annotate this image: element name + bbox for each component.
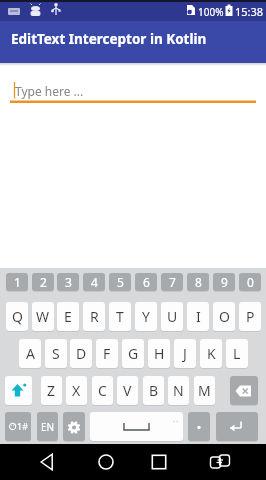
button[interactable]: F — [96, 339, 118, 368]
button[interactable]: V — [117, 376, 138, 405]
button[interactable]: T — [109, 302, 131, 331]
button[interactable]: Type here ... — [10, 63, 256, 105]
button[interactable] — [90, 412, 183, 441]
staticText: W — [36, 307, 50, 326]
staticText: Q — [12, 307, 23, 326]
staticText: 2 — [40, 274, 47, 290]
staticText: K — [207, 344, 216, 363]
button[interactable]: Y — [135, 302, 157, 331]
staticText: X — [72, 381, 81, 400]
staticText: F — [103, 344, 111, 363]
button[interactable] — [143, 446, 175, 478]
staticText: 8 — [195, 274, 202, 290]
button[interactable]: Q — [6, 302, 28, 331]
staticText: O — [219, 307, 230, 326]
button[interactable]: I — [187, 302, 209, 331]
button[interactable]: 5 — [109, 273, 131, 291]
button[interactable]: 0 — [239, 273, 261, 291]
button[interactable]: EditText Interceptor in Kotlin — [0, 21, 266, 63]
button[interactable]: 7 — [161, 273, 183, 291]
button[interactable] — [230, 376, 258, 405]
button[interactable]: G — [122, 339, 144, 368]
button[interactable]: E — [57, 302, 79, 331]
staticText: J — [183, 344, 187, 363]
staticText: 15:38 — [235, 4, 264, 19]
staticText: E — [64, 307, 72, 326]
staticText: U — [167, 307, 178, 326]
button[interactable] — [188, 412, 210, 441]
button[interactable] — [32, 446, 64, 478]
staticText: I — [196, 307, 201, 326]
staticText: Type here ... — [15, 83, 84, 99]
button[interactable]: U — [161, 302, 183, 331]
button[interactable] — [216, 412, 258, 441]
button[interactable]: O — [213, 302, 235, 331]
button[interactable]: 8 — [187, 273, 209, 291]
button[interactable] — [90, 446, 122, 478]
button[interactable]: W — [32, 302, 54, 331]
staticText: 7 — [169, 274, 176, 290]
staticText: B — [149, 381, 159, 400]
button[interactable]: M — [194, 376, 215, 405]
button[interactable]: 4 — [83, 273, 105, 291]
staticText: 5 — [117, 274, 124, 290]
staticText: 4 — [91, 274, 98, 290]
staticText: C — [98, 381, 107, 400]
staticText: 1# — [17, 420, 28, 432]
staticText: N — [173, 381, 184, 400]
staticText: G — [128, 344, 139, 363]
staticText: D — [76, 344, 87, 363]
button[interactable] — [63, 412, 85, 441]
button[interactable]: A — [19, 339, 41, 368]
staticText: 100% — [198, 5, 224, 19]
staticText: 6 — [143, 274, 150, 290]
staticText: 3 — [65, 274, 72, 290]
button[interactable]: EN — [37, 412, 58, 441]
button[interactable]: P — [239, 302, 261, 331]
staticText: EN — [41, 420, 55, 434]
button[interactable]: N — [168, 376, 189, 405]
staticText: P — [246, 307, 255, 326]
button[interactable]: D — [70, 339, 92, 368]
button[interactable]: C — [92, 376, 113, 405]
staticText: H — [154, 344, 165, 363]
button[interactable]: 1 — [6, 273, 28, 291]
staticText: 1 — [14, 274, 21, 290]
button[interactable]: X — [66, 376, 87, 405]
button[interactable]: 1# — [5, 412, 31, 441]
staticText: 0 — [247, 274, 254, 290]
button[interactable]: R — [83, 302, 105, 331]
button[interactable]: 9 — [213, 273, 235, 291]
button[interactable]: H — [148, 339, 170, 368]
staticText: V — [123, 381, 132, 400]
staticText: Y — [142, 307, 150, 326]
staticText: A — [26, 344, 35, 363]
button[interactable]: 2 — [32, 273, 54, 291]
staticText: Z — [47, 381, 56, 400]
staticText: R — [90, 307, 99, 326]
button[interactable]: 6 — [135, 273, 157, 291]
staticText: M — [198, 381, 211, 400]
button[interactable]: K — [200, 339, 222, 368]
button[interactable] — [204, 446, 236, 478]
staticText: L — [233, 344, 241, 363]
button[interactable]: J — [174, 339, 196, 368]
button[interactable] — [5, 376, 32, 405]
button[interactable]: B — [143, 376, 164, 405]
button[interactable]: L — [226, 339, 248, 368]
staticText: 9 — [221, 274, 228, 290]
staticText: T — [116, 307, 124, 326]
staticText: EditText Interceptor in Kotlin — [11, 30, 207, 48]
staticText: S — [52, 344, 60, 363]
button[interactable]: Z — [41, 376, 62, 405]
button[interactable]: 3 — [57, 273, 79, 291]
button[interactable]: S — [45, 339, 67, 368]
